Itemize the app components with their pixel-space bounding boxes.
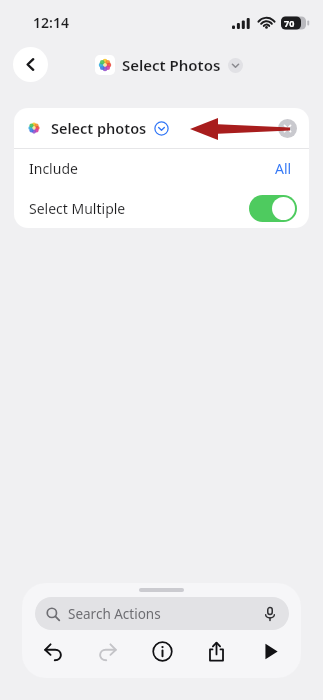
button[interactable]: Undo bbox=[36, 634, 70, 668]
button[interactable]: Redo bbox=[90, 634, 124, 668]
staticText: Include bbox=[29, 159, 78, 178]
button[interactable]: Back bbox=[13, 47, 48, 82]
staticText: Select photos bbox=[51, 118, 147, 138]
staticText: 70 bbox=[284, 17, 295, 29]
button[interactable]: Search Actions bbox=[35, 597, 289, 630]
staticText: Search Actions bbox=[68, 605, 161, 623]
button[interactable]: Run bbox=[253, 634, 287, 668]
button[interactable]: Include bbox=[14, 149, 309, 188]
staticText: All bbox=[275, 159, 292, 178]
button[interactable]: Select photos bbox=[14, 108, 309, 148]
button[interactable]: Share bbox=[199, 634, 233, 668]
button[interactable]: Select Photos bbox=[95, 55, 243, 75]
button[interactable]: Select Multiple bbox=[14, 188, 309, 228]
button[interactable]: Info bbox=[145, 634, 179, 668]
staticText: Select Multiple bbox=[29, 199, 126, 218]
staticText: 12:14 bbox=[33, 13, 69, 32]
button[interactable]: Select Multiple bbox=[249, 195, 297, 222]
staticText: Select Photos bbox=[122, 55, 221, 75]
button[interactable]: Remove action bbox=[278, 119, 297, 138]
button[interactable]: Voice input bbox=[261, 605, 279, 623]
